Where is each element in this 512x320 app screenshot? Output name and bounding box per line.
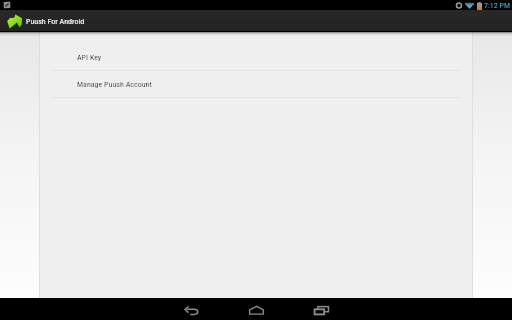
staticText: Puush For Android — [26, 17, 85, 26]
button[interactable]: Back — [164, 298, 218, 320]
button[interactable]: Home — [229, 298, 283, 320]
button[interactable]: Recent apps — [294, 298, 348, 320]
button[interactable]: Manage Puush Account — [40, 71, 472, 97]
other: App icon — [7, 14, 22, 29]
staticText: API Key — [77, 53, 102, 62]
button[interactable]: API Key — [40, 44, 472, 70]
button[interactable]: App icon — [0, 10, 85, 32]
staticText: Manage Puush Account — [77, 80, 152, 89]
staticText: 7:12 PM — [484, 1, 511, 10]
